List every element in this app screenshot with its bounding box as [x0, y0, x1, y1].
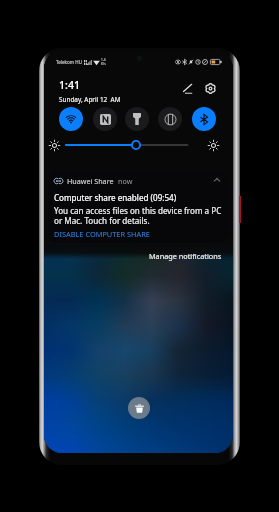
button[interactable]: Auto rotate — [158, 107, 182, 131]
button[interactable]: Clear all notifications — [128, 397, 150, 419]
staticText: Computer share enabled (09:54) — [54, 192, 177, 203]
button[interactable]: Wi-Fi — [59, 107, 83, 131]
staticText: now — [118, 176, 133, 186]
button[interactable]: Edit quick settings — [178, 79, 196, 97]
staticText: Telekom HU — [56, 59, 83, 65]
staticText: 1:41 — [59, 78, 81, 92]
staticText: Huawei Share — [67, 176, 114, 186]
staticText: Manage notifications — [149, 251, 222, 261]
button[interactable]: DISABLE COMPUTER SHARE — [52, 227, 152, 241]
button[interactable]: Decrease brightness — [49, 140, 60, 151]
staticText: 1.4 — [101, 58, 106, 62]
staticText: or Mac. Touch for details. — [54, 215, 150, 226]
button[interactable]: Bluetooth — [192, 107, 216, 131]
staticText: Sunday, April 12 AM — [59, 95, 121, 104]
staticText: DISABLE COMPUTER SHARE — [54, 229, 150, 239]
button[interactable]: NFC — [93, 107, 117, 131]
button[interactable]: Flashlight — [125, 107, 149, 131]
staticText: K/s — [101, 62, 106, 66]
button[interactable]: Increase brightness — [208, 140, 219, 151]
staticText: You can access files on this device from… — [54, 205, 222, 216]
button[interactable]: Settings — [201, 79, 219, 97]
button[interactable]: Manage notifications — [146, 248, 225, 264]
button[interactable]: Huawei Share — [48, 171, 229, 243]
button[interactable]: Collapse — [210, 173, 224, 187]
